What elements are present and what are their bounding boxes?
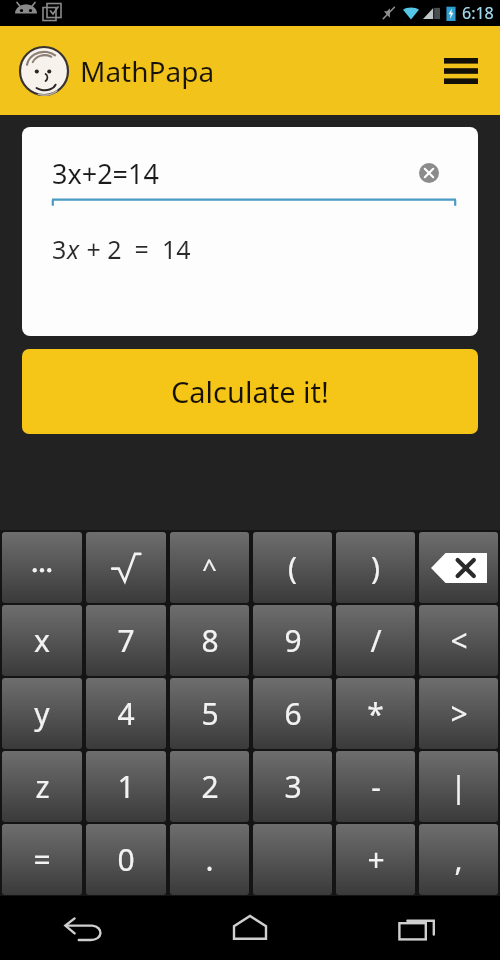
button[interactable]: Calculate it! <box>22 349 478 434</box>
staticText: , <box>454 839 463 880</box>
button[interactable]: > <box>419 678 498 749</box>
button[interactable]: Square root <box>86 532 166 603</box>
button[interactable]: 5 <box>170 678 249 749</box>
staticText: x <box>67 232 80 266</box>
button[interactable]: - <box>336 751 415 822</box>
button[interactable]: ( <box>253 532 332 603</box>
staticText: = <box>33 839 51 880</box>
staticText: Calculate it! <box>171 372 329 411</box>
button[interactable]: Back <box>0 896 166 960</box>
button[interactable]: 8 <box>170 605 249 676</box>
button[interactable]: Home <box>166 896 333 960</box>
staticText: | <box>450 766 467 807</box>
button[interactable]: Recent apps <box>333 896 500 960</box>
button[interactable]: z <box>2 751 82 822</box>
staticText: + 2 = 14 <box>80 232 191 266</box>
button[interactable]: = <box>2 824 82 895</box>
button[interactable]: ) <box>336 532 415 603</box>
staticText: ( <box>288 547 297 588</box>
staticText: y <box>34 693 50 734</box>
button[interactable]: , <box>419 824 498 895</box>
button[interactable]: ^ <box>170 532 249 603</box>
button[interactable]: / <box>336 605 415 676</box>
button[interactable]: 6 <box>253 678 332 749</box>
staticText: x <box>34 620 50 661</box>
button[interactable]: | <box>419 751 498 822</box>
staticText: 7 <box>117 620 135 661</box>
staticText: . <box>205 839 214 880</box>
button[interactable]: x <box>2 605 82 676</box>
staticText: * <box>367 693 384 734</box>
staticText: ^ <box>202 550 217 585</box>
button[interactable]: Open navigation menu <box>436 46 486 96</box>
button[interactable]: 3 <box>253 751 332 822</box>
button[interactable]: Backspace <box>419 532 498 603</box>
button[interactable]: . <box>170 824 249 895</box>
button[interactable]: + <box>336 824 415 895</box>
staticText: 2 <box>201 766 219 807</box>
staticText: z <box>35 766 50 807</box>
button[interactable]: 0 <box>86 824 166 895</box>
button[interactable]: 3x+2=14 <box>22 127 478 336</box>
staticText: 5 <box>201 693 219 734</box>
button[interactable]: 4 <box>86 678 166 749</box>
staticText: + <box>367 839 385 880</box>
staticText: < <box>450 620 468 661</box>
staticText: 3 <box>284 766 302 807</box>
button[interactable]: More functions <box>2 532 82 603</box>
staticText: 1 <box>117 766 135 807</box>
button[interactable]: y <box>2 678 82 749</box>
button[interactable]: 7 <box>86 605 166 676</box>
staticText: 4 <box>117 693 135 734</box>
staticText: 6 <box>284 693 302 734</box>
button[interactable]: Clear input <box>416 160 442 186</box>
button[interactable]: 9 <box>253 605 332 676</box>
staticText: 8 <box>201 620 219 661</box>
staticText: 3 <box>52 232 67 266</box>
button[interactable]: 1 <box>86 751 166 822</box>
button[interactable]: MathPapa <box>20 47 215 95</box>
button[interactable]: 2 <box>170 751 249 822</box>
staticText: 3x+2=14 <box>52 155 159 192</box>
staticText: - <box>371 766 381 807</box>
staticText: > <box>450 693 468 734</box>
button[interactable]: < <box>419 605 498 676</box>
staticText: 6:18 <box>462 2 494 24</box>
button[interactable]: * <box>336 678 415 749</box>
staticText: MathPapa <box>80 52 215 90</box>
staticText: ) <box>371 547 380 588</box>
staticText: 9 <box>284 620 302 661</box>
staticText: 0 <box>117 839 135 880</box>
button[interactable]: Blank key <box>253 824 332 895</box>
staticText: / <box>370 620 382 661</box>
